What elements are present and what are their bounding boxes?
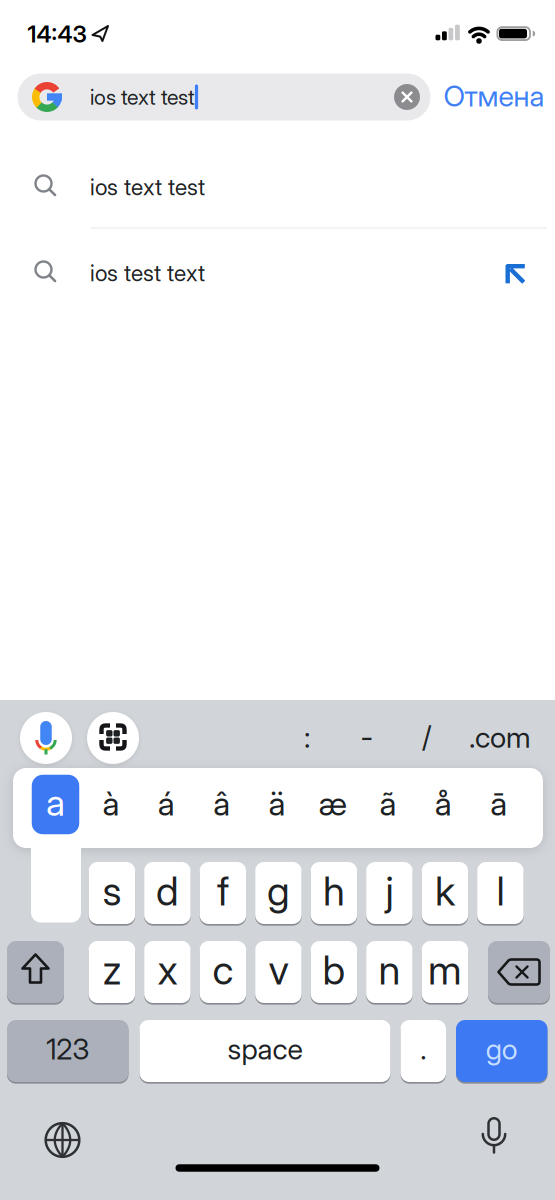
button[interactable]: Shift [7,941,64,1003]
staticText: m [428,946,462,994]
button[interactable]: l [477,862,524,924]
button[interactable]: Go [456,1020,547,1082]
staticText: ã [379,784,396,823]
button[interactable]: ä [251,767,303,839]
staticText: Отмена [443,79,544,113]
staticText: a [46,780,65,825]
button[interactable]: Clear text [394,84,420,110]
button[interactable]: á [140,767,192,839]
button[interactable]: c [200,941,246,1003]
button[interactable]: - [343,707,391,767]
button[interactable]: k [422,862,468,924]
staticText: go [486,1032,518,1066]
staticText: æ [318,784,346,823]
button[interactable]: : [283,707,331,767]
button[interactable]: ios test text [0,230,555,314]
staticText: b [322,946,345,994]
button[interactable]: ios text test [0,144,555,228]
staticText: l [496,867,504,915]
button[interactable]: m [422,941,468,1003]
staticText: 123 [46,1032,89,1066]
staticText: á [158,784,175,823]
staticText: ios text test [90,84,195,110]
staticText: : [304,719,310,755]
staticText: z [102,946,121,994]
staticText: n [378,946,400,994]
button[interactable]: space [139,1020,390,1082]
button[interactable]: æ [306,767,358,839]
button[interactable]: å [417,767,469,839]
staticText: j [385,867,393,915]
button[interactable]: Search with your camera [87,712,139,764]
button[interactable]: . [400,1020,446,1082]
staticText: v [268,946,288,994]
button[interactable]: / [403,707,451,767]
staticText: space [227,1032,302,1066]
staticText: s [102,867,121,915]
button[interactable]: 123 [7,1020,128,1082]
button[interactable]: x [144,941,191,1003]
button[interactable]: ã [362,767,414,839]
staticText: h [323,867,345,915]
button[interactable]: à [85,767,137,839]
button[interactable]: .com [462,707,538,767]
staticText: å [435,784,452,823]
staticText: .com [469,719,531,755]
button[interactable]: s [89,862,135,924]
staticText: ā [490,784,507,823]
staticText: à [102,784,119,823]
staticText: g [267,867,290,915]
button[interactable]: j [366,862,413,924]
button[interactable]: Delete [488,941,550,1003]
button[interactable]: v [255,941,302,1003]
staticText: k [435,867,455,915]
staticText: ä [269,784,286,823]
staticText: c [212,946,233,994]
button[interactable]: ā [473,767,525,839]
staticText: d [156,867,179,915]
staticText: â [213,784,230,823]
button[interactable]: Dictation [464,1107,524,1167]
button[interactable]: h [311,862,357,924]
staticText: 14:43 [27,20,86,48]
button[interactable]: z [89,941,135,1003]
button[interactable]: f [200,862,246,924]
staticText: / [422,719,432,755]
staticText: x [157,946,177,994]
staticText: - [360,719,373,755]
staticText: ios test text [90,259,205,287]
button[interactable]: g [255,862,302,924]
button[interactable]: Voice search [20,712,72,764]
staticText: . [420,1032,426,1066]
button[interactable]: Next keyboard [32,1110,92,1170]
button[interactable]: d [144,862,191,924]
button[interactable]: Отмена [436,72,552,119]
button[interactable]: b [311,941,357,1003]
staticText: ios text test [90,173,205,201]
button[interactable]: â [196,767,248,839]
button[interactable]: n [366,941,413,1003]
staticText: f [217,867,229,915]
